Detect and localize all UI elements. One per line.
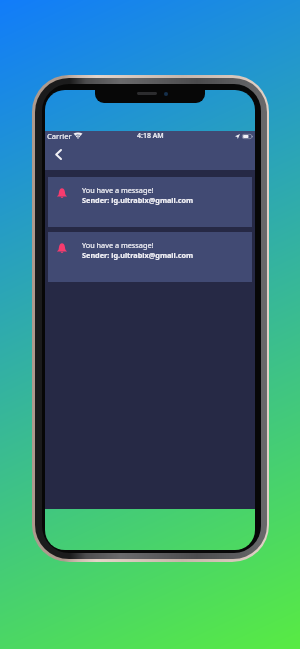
staticText: You have a message! (82, 240, 154, 250)
button[interactable]: You have a message! (48, 177, 252, 227)
button[interactable]: Back (49, 145, 67, 163)
staticText: Carrier (47, 131, 72, 141)
button[interactable]: You have a message! (48, 232, 252, 282)
staticText: Sender: ig.ultrabix@gmail.com (82, 195, 194, 205)
staticText: Sender: ig.ultrabix@gmail.com (82, 250, 194, 260)
staticText: 4:18 AM (137, 131, 164, 141)
staticText: You have a message! (82, 185, 154, 195)
